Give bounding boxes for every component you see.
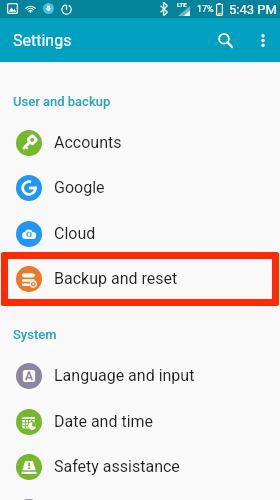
staticText: Settings: [13, 31, 72, 50]
button[interactable]: Safety assistance: [0, 444, 280, 489]
button[interactable]: Backup and reset: [0, 256, 280, 301]
button[interactable]: Date and time: [0, 399, 280, 444]
staticText: Safety assistance: [54, 457, 180, 476]
staticText: Google: [54, 178, 105, 197]
staticText: 5:43 PM: [229, 2, 277, 17]
staticText: System: [13, 327, 57, 342]
staticText: Backup and reset: [54, 269, 178, 288]
button[interactable]: More options: [247, 18, 278, 62]
staticText: LTE: [177, 1, 187, 8]
staticText: 17%: [197, 4, 214, 15]
button[interactable]: Cloud: [0, 211, 280, 256]
staticText: Date and time: [54, 412, 154, 431]
button[interactable]: Google: [0, 165, 280, 210]
staticText: User and backup: [13, 94, 111, 109]
staticText: Cloud: [54, 224, 96, 243]
button[interactable]: Search: [203, 18, 247, 62]
staticText: Language and input: [54, 366, 195, 385]
button[interactable]: Accounts: [0, 120, 280, 165]
button[interactable]: Language and input: [0, 353, 280, 398]
staticText: Accounts: [54, 133, 122, 152]
